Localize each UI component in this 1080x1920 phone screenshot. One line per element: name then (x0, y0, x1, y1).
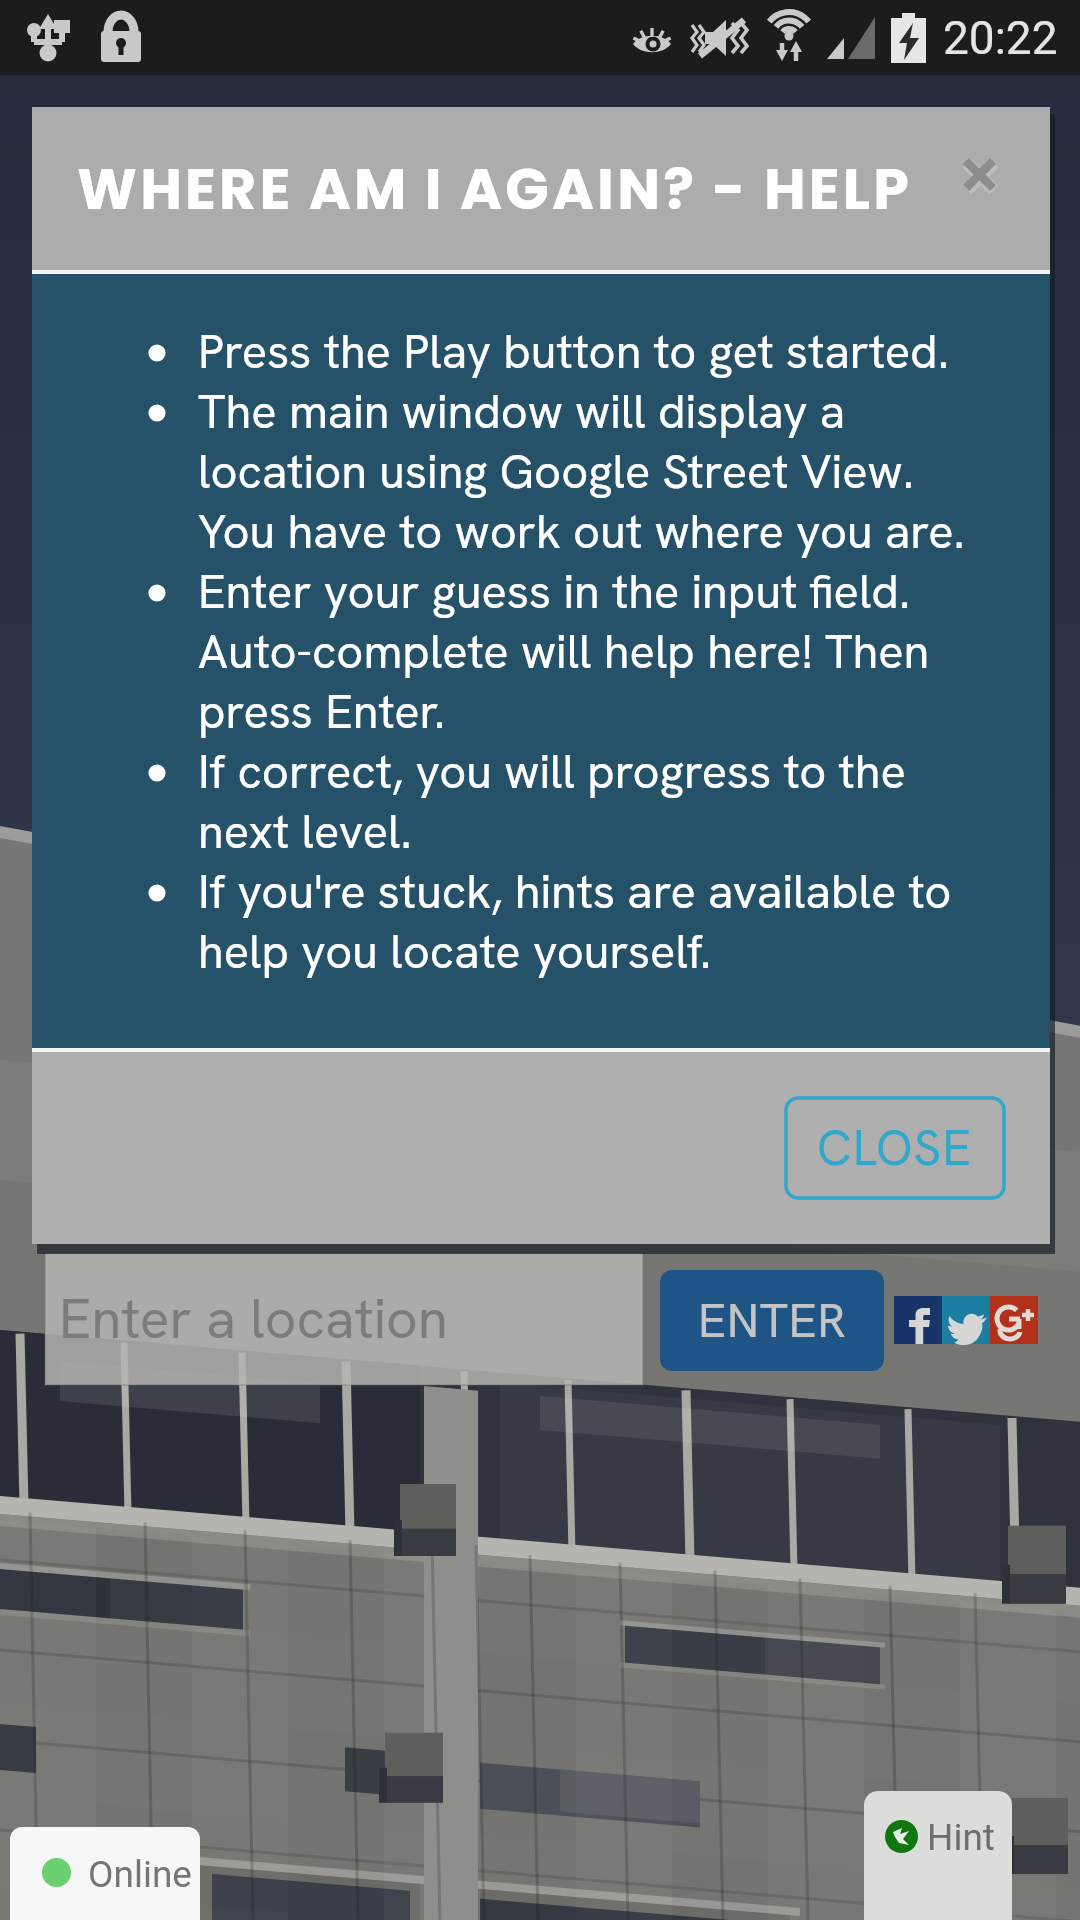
staticText: next level. (198, 801, 412, 861)
staticText: 20:22 (943, 11, 1058, 65)
staticText: Enter your guess in the input field. (198, 561, 911, 621)
staticText: Enter a location (59, 1283, 448, 1355)
staticText: help you locate yourself. (198, 921, 712, 981)
staticText: location using Google Street View. (198, 441, 914, 501)
staticText: Press the Play button to get started. (198, 321, 949, 381)
staticText: The main window will display a (198, 381, 846, 441)
staticText: ENTER (698, 1289, 847, 1352)
staticText: You have to work out where you are. (198, 501, 965, 561)
staticText: WHERE AM I AGAIN? - HELP (77, 149, 912, 229)
staticText: CLOSE (817, 1116, 973, 1180)
staticText: Online (88, 1853, 192, 1896)
button[interactable]: Share on Facebook (894, 1296, 942, 1344)
button[interactable]: CLOSE (786, 1098, 1004, 1198)
button[interactable]: Enter a location (45, 1253, 643, 1385)
button[interactable]: ENTER (660, 1270, 884, 1371)
button[interactable]: Share on Google Plus (990, 1296, 1038, 1344)
staticText: If correct, you will progress to the (198, 741, 906, 801)
button[interactable]: Online status (10, 1827, 200, 1920)
staticText: Hint (927, 1816, 995, 1859)
button[interactable]: Hint (864, 1791, 1012, 1920)
button[interactable]: Share on Twitter (942, 1296, 990, 1344)
button[interactable]: Close dialog (950, 143, 1008, 201)
staticText: If you're stuck, hints are available to (198, 861, 952, 921)
staticText: Auto-complete will help here! Then (198, 621, 930, 681)
staticText: press Enter. (198, 681, 446, 741)
